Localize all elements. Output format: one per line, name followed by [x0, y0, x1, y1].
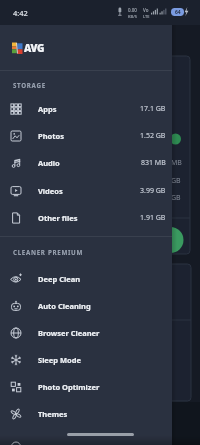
button[interactable]: Videos [0, 177, 172, 204]
button[interactable]: Auto Cleaning [0, 292, 172, 319]
button[interactable]: Themes [0, 400, 172, 427]
staticText: 17.1 GB [140, 104, 166, 114]
button[interactable] [0, 433, 172, 445]
staticText: CLEANER PREMIUM [13, 248, 83, 256]
staticText: 0.00 [128, 7, 137, 13]
button[interactable]: Photo Optimizer [0, 373, 172, 400]
staticText: Deep Clean [38, 274, 81, 284]
staticText: Browser Cleaner [38, 328, 100, 338]
staticText: GB [171, 193, 181, 203]
staticText: Vo [143, 7, 149, 13]
staticText: Other files [38, 213, 78, 223]
staticText: KB/S [128, 14, 137, 19]
staticText: GB [171, 176, 181, 186]
staticText: Apps [38, 104, 57, 114]
staticText: Photo Optimizer [38, 382, 100, 392]
staticText: AVG [24, 41, 45, 55]
staticText: LTE [143, 14, 150, 19]
button[interactable]: Sleep Mode [0, 346, 172, 373]
staticText: Themes [38, 409, 68, 419]
staticText: 3.99 GB [140, 186, 166, 196]
staticText: 4:42 [13, 8, 28, 18]
staticText: MB [171, 158, 182, 168]
staticText: STORAGE [13, 81, 46, 89]
button[interactable]: Browser Cleaner [0, 319, 172, 346]
button[interactable]: Photos [0, 122, 172, 149]
staticText: Videos [38, 186, 63, 196]
staticText: Photos [38, 131, 64, 141]
staticText: 64 [175, 9, 181, 16]
staticText: 831 MB [141, 158, 166, 168]
staticText: 1.91 GB [140, 213, 166, 223]
staticText: Audio [38, 158, 60, 168]
staticText: 1.52 GB [140, 131, 166, 141]
staticText: Auto Cleaning [38, 301, 91, 311]
button[interactable]: Deep Clean [0, 265, 172, 292]
button[interactable]: Audio [0, 149, 172, 176]
button[interactable]: Other files [0, 204, 172, 231]
button[interactable]: Apps [0, 95, 172, 122]
staticText: Sleep Mode [38, 355, 81, 365]
